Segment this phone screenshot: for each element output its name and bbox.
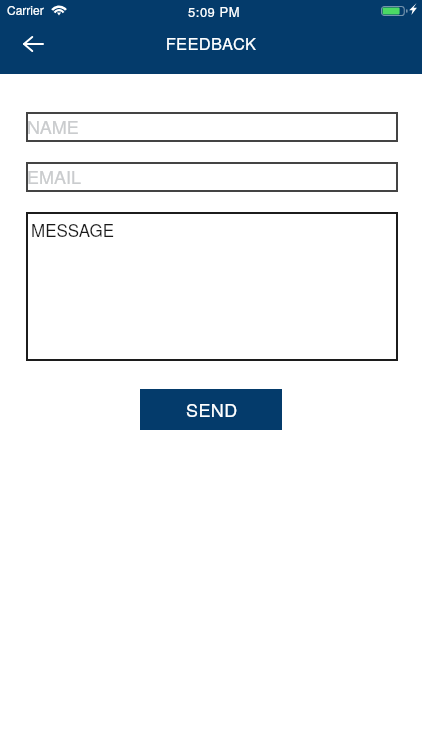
button[interactable]: SEND [140,389,282,430]
staticText: Carrier [7,1,44,18]
staticText: FEEDBACK [0,31,422,55]
staticText: NAME [27,113,79,139]
button[interactable]: EMAIL [26,162,398,192]
staticText: 5:09 PM [3,2,422,21]
button[interactable]: Back [11,22,55,66]
button[interactable]: NAME [26,112,398,142]
button[interactable]: MESSAGE [26,212,398,361]
staticText: EMAIL [27,163,82,189]
staticText: MESSAGE [31,217,115,241]
staticText: SEND [186,396,238,422]
